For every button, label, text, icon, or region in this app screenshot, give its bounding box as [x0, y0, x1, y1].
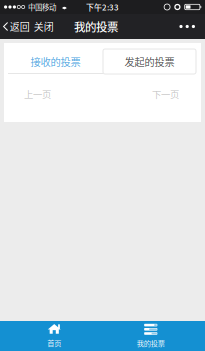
button[interactable]: 上一页 — [24, 83, 51, 105]
staticText: 关闭 — [34, 19, 54, 34]
staticText: 接收的投票 — [30, 54, 80, 69]
staticText: 我的投票 — [74, 18, 118, 35]
button[interactable]: 我的投票 — [102, 321, 199, 351]
button[interactable]: 返回 — [0, 14, 32, 39]
staticText: 发起的投票 — [124, 54, 174, 69]
staticText: 上一页 — [24, 87, 51, 101]
button[interactable]: 接收的投票 — [8, 49, 103, 74]
staticText: 下一页 — [152, 87, 179, 101]
staticText: 我的投票 — [137, 338, 165, 348]
staticText: 下午2:33 — [86, 1, 119, 13]
staticText: 首页 — [47, 337, 61, 348]
button[interactable]: More options — [174, 14, 200, 39]
button[interactable]: 首页 — [6, 321, 102, 351]
staticText: 中国移动 — [28, 2, 56, 12]
button[interactable]: 关闭 — [32, 14, 56, 39]
button[interactable]: 发起的投票 — [103, 49, 196, 74]
staticText: 返回 — [10, 19, 30, 34]
button[interactable]: 下一页 — [152, 83, 179, 105]
